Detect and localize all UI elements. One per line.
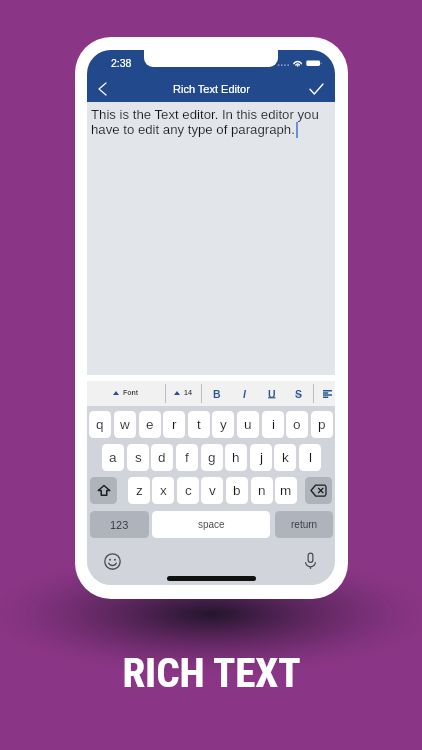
staticText: v	[209, 483, 216, 498]
staticText: u	[244, 417, 252, 432]
staticText: Font	[123, 389, 139, 397]
button[interactable]: r	[163, 411, 185, 438]
button[interactable]: j	[250, 444, 272, 471]
staticText: m	[280, 483, 292, 498]
button[interactable]: Rich Text Editor	[151, 78, 271, 100]
button[interactable]: Emoji	[102, 551, 122, 571]
button[interactable]: v	[201, 477, 223, 504]
button[interactable]: o	[286, 411, 308, 438]
staticText: i	[272, 417, 275, 432]
button[interactable]: u	[237, 411, 259, 438]
staticText: g	[208, 450, 216, 465]
button[interactable]: k	[274, 444, 296, 471]
staticText: S	[295, 388, 303, 400]
button[interactable]: x	[152, 477, 174, 504]
staticText: space	[198, 519, 225, 530]
button[interactable]: I	[235, 381, 253, 406]
staticText: z	[136, 483, 143, 498]
staticText: w	[120, 417, 130, 432]
button[interactable]: f	[176, 444, 198, 471]
staticText: s	[135, 450, 142, 465]
button[interactable]: y	[212, 411, 234, 438]
staticText: 14	[184, 389, 192, 397]
button[interactable]: S	[290, 381, 308, 406]
button[interactable]: b	[226, 477, 248, 504]
button[interactable]: 14	[169, 381, 199, 406]
staticText: d	[158, 450, 166, 465]
button[interactable]: i	[262, 411, 284, 438]
button[interactable]: a	[102, 444, 124, 471]
staticText: o	[293, 417, 301, 432]
staticText: I	[243, 388, 246, 400]
button[interactable]: Back	[90, 77, 114, 101]
staticText: t	[197, 417, 201, 432]
staticText: a	[109, 450, 117, 465]
button[interactable]: n	[251, 477, 273, 504]
button[interactable]: Microphone	[300, 551, 320, 571]
staticText: This is the Text editor. In this editor …	[91, 107, 319, 136]
button[interactable]: U	[263, 381, 281, 406]
staticText: B	[213, 388, 221, 400]
button[interactable]: l	[299, 444, 321, 471]
button[interactable]: 123	[90, 511, 149, 538]
button[interactable]: d	[151, 444, 173, 471]
button[interactable]: Backspace	[305, 477, 332, 504]
staticText: RICH TEXT	[122, 649, 301, 697]
button[interactable]: space	[152, 511, 270, 538]
button[interactable]: Shift	[90, 477, 117, 504]
button[interactable]: B	[208, 381, 226, 406]
staticText: r	[172, 417, 177, 432]
button[interactable]: Done	[304, 77, 328, 101]
button[interactable]: Font	[103, 381, 163, 406]
staticText: f	[185, 450, 189, 465]
button[interactable]: q	[89, 411, 111, 438]
staticText: 2:38	[111, 57, 132, 69]
staticText: b	[233, 483, 241, 498]
staticText: q	[96, 417, 104, 432]
staticText: n	[258, 483, 266, 498]
staticText: l	[309, 450, 312, 465]
staticText: h	[232, 450, 240, 465]
staticText: y	[220, 417, 227, 432]
staticText: 123	[110, 519, 129, 531]
button[interactable]: return	[275, 511, 333, 538]
button[interactable]: g	[201, 444, 223, 471]
staticText: x	[160, 483, 167, 498]
button[interactable]: z	[128, 477, 150, 504]
button[interactable]: t	[188, 411, 210, 438]
staticText: Rich Text Editor	[173, 83, 250, 95]
button[interactable]: Align left	[319, 381, 335, 406]
button[interactable]: p	[311, 411, 333, 438]
staticText: k	[282, 450, 289, 465]
staticText: p	[318, 417, 326, 432]
button[interactable]: s	[127, 444, 149, 471]
button[interactable]: w	[114, 411, 136, 438]
button[interactable]: m	[275, 477, 297, 504]
staticText: U	[268, 388, 276, 400]
staticText: e	[146, 417, 154, 432]
button[interactable]: c	[177, 477, 199, 504]
staticText: return	[291, 519, 318, 530]
button[interactable]: e	[139, 411, 161, 438]
button[interactable]: h	[225, 444, 247, 471]
staticText: j	[260, 450, 263, 465]
staticText: c	[185, 483, 192, 498]
